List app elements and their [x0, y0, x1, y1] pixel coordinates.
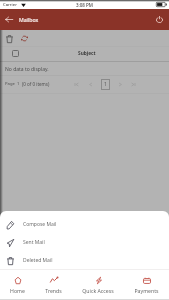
- button[interactable]: Quick Access: [82, 270, 114, 300]
- button[interactable]: Delete: [2, 32, 16, 45]
- button[interactable]: 1: [101, 79, 110, 90]
- button[interactable]: Payments: [134, 270, 159, 300]
- staticText: Deleted Mail: [23, 257, 53, 264]
- button[interactable]: Compose Mail: [0, 215, 169, 233]
- button[interactable]: Back: [0, 9, 18, 30]
- staticText: Subject: [78, 50, 96, 57]
- staticText: Mailbox: [19, 16, 39, 23]
- staticText: Quick Access: [82, 287, 114, 294]
- staticText: Page: [5, 81, 15, 87]
- button[interactable]: Sent Mail: [0, 233, 169, 251]
- staticText: Carrier: [3, 2, 17, 8]
- staticText: 1: [104, 81, 107, 88]
- staticText: (0 of 0 items): [22, 81, 50, 87]
- button[interactable]: Trends: [45, 270, 62, 300]
- staticText: 1: [17, 81, 20, 87]
- staticText: Payments: [134, 287, 159, 294]
- staticText: Home: [10, 287, 25, 294]
- staticText: 3:08 PM: [76, 2, 93, 8]
- button[interactable]: Power off: [149, 9, 169, 30]
- button[interactable]: Refresh: [17, 32, 31, 45]
- button[interactable]: Select all: [12, 50, 19, 57]
- button[interactable]: Home: [10, 270, 25, 300]
- staticText: Compose Mail: [23, 221, 57, 228]
- button[interactable]: Deleted Mail: [0, 251, 169, 269]
- staticText: Trends: [45, 287, 62, 294]
- staticText: Sent Mail: [23, 239, 45, 246]
- staticText: No data to display.: [5, 66, 49, 73]
